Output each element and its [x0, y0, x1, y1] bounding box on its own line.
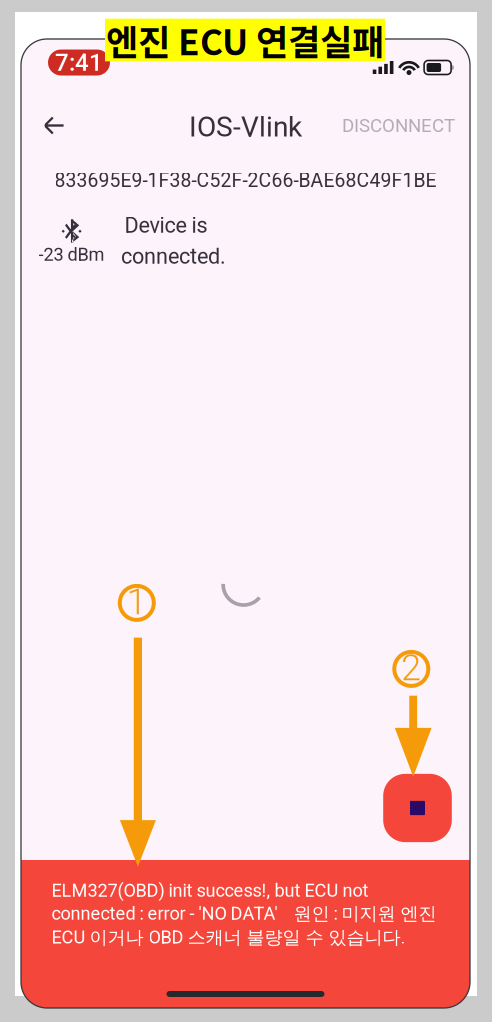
button[interactable]: Back — [27, 98, 81, 152]
staticText: 엔진 ECU 연결실패 — [106, 15, 384, 65]
button[interactable]: DISCONNECT — [332, 98, 465, 152]
staticText: 1 — [127, 581, 147, 623]
button[interactable]: Stop — [383, 774, 452, 842]
staticText: ELM327(OBD) init success!, but ECU not — [51, 880, 368, 901]
staticText: 833695E9-1F38-C52F-2C66-BAE68C49F1BE — [54, 169, 436, 192]
staticText: -23 dBm — [39, 244, 105, 265]
staticText: 2 — [401, 647, 421, 689]
staticText: 7:41 — [55, 48, 103, 76]
staticText: connected : error - 'NO DATA' 원인 : 미지원 엔… — [51, 902, 436, 925]
staticText: connected. — [121, 244, 226, 269]
staticText: ECU 이거나 OBD 스캐너 불량일 수 있습니다. — [51, 926, 405, 949]
staticText: DISCONNECT — [342, 115, 455, 136]
staticText: IOS-Vlink — [189, 111, 302, 143]
staticText: Device is — [124, 213, 207, 238]
